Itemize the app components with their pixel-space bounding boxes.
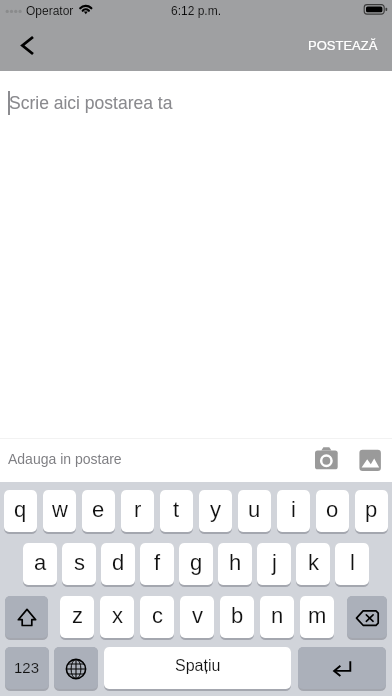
staticText: z <box>72 603 83 628</box>
button[interactable]: j <box>257 543 291 588</box>
button[interactable]: Back <box>4 26 44 64</box>
staticText: g <box>190 550 203 575</box>
button[interactable]: n <box>260 596 294 641</box>
button[interactable]: Numbers <box>5 647 49 692</box>
button[interactable]: Backspace <box>347 596 387 641</box>
staticText: n <box>271 603 284 628</box>
staticText: q <box>14 497 27 522</box>
button[interactable]: POSTEAZĂ <box>296 28 392 63</box>
button[interactable]: e <box>82 490 115 535</box>
staticText: r <box>134 497 142 522</box>
staticText: Operator <box>26 4 74 17</box>
button[interactable]: m <box>300 596 334 641</box>
button[interactable]: k <box>296 543 330 588</box>
staticText: w <box>52 497 68 522</box>
staticText: h <box>229 550 242 575</box>
button[interactable]: i <box>277 490 310 535</box>
button[interactable]: y <box>199 490 232 535</box>
staticText: y <box>210 497 221 522</box>
button[interactable]: f <box>140 543 174 588</box>
staticText: j <box>272 550 277 575</box>
button[interactable]: t <box>160 490 193 535</box>
staticText: b <box>231 603 244 628</box>
button[interactable]: c <box>140 596 174 641</box>
button[interactable]: w <box>43 490 76 535</box>
staticText: d <box>112 550 125 575</box>
button[interactable]: r <box>121 490 154 535</box>
button[interactable]: Spațiu <box>104 647 291 692</box>
button[interactable]: Next keyboard <box>54 647 98 692</box>
button[interactable]: h <box>218 543 252 588</box>
button[interactable]: z <box>60 596 94 641</box>
button[interactable]: u <box>238 490 271 535</box>
button[interactable]: Camera <box>310 445 343 478</box>
staticText: POSTEAZĂ <box>308 38 378 53</box>
button[interactable]: q <box>4 490 37 535</box>
staticText: u <box>248 497 261 522</box>
staticText: m <box>308 603 327 628</box>
staticText: i <box>291 497 296 522</box>
staticText: k <box>308 550 319 575</box>
staticText: Adauga in postare <box>8 451 122 467</box>
button[interactable]: g <box>179 543 213 588</box>
staticText: p <box>365 497 378 522</box>
staticText: f <box>154 550 161 575</box>
staticText: Spațiu <box>175 657 221 675</box>
button[interactable]: s <box>62 543 96 588</box>
staticText: e <box>92 497 105 522</box>
staticText: Scrie aici postarea ta <box>9 93 173 113</box>
button[interactable]: l <box>335 543 369 588</box>
button[interactable]: d <box>101 543 135 588</box>
button[interactable]: Return <box>298 647 386 692</box>
button[interactable]: v <box>180 596 214 641</box>
staticText: c <box>152 603 163 628</box>
staticText: 123 <box>14 659 40 676</box>
button[interactable]: Shift <box>5 596 48 641</box>
button[interactable]: a <box>23 543 57 588</box>
staticText: 6:12 p.m. <box>0 4 392 17</box>
staticText: l <box>350 550 355 575</box>
staticText: a <box>34 550 47 575</box>
button[interactable]: o <box>316 490 349 535</box>
staticText: v <box>192 603 203 628</box>
button[interactable]: b <box>220 596 254 641</box>
staticText: s <box>74 550 85 575</box>
button[interactable]: Photo library <box>354 444 386 476</box>
staticText: x <box>112 603 123 628</box>
button[interactable]: p <box>355 490 388 535</box>
button[interactable]: x <box>100 596 134 641</box>
staticText: t <box>173 497 180 522</box>
staticText: o <box>326 497 339 522</box>
